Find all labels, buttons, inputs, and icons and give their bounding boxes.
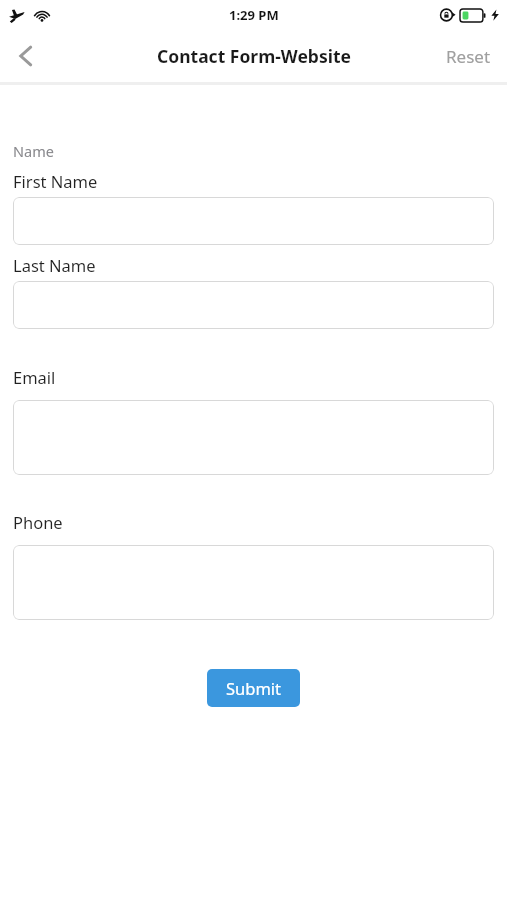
button[interactable]: Reset [434, 37, 503, 76]
button[interactable]: Submit [207, 669, 300, 707]
staticText: Submit [226, 677, 282, 699]
staticText: Reset [446, 45, 491, 68]
staticText: Phone [13, 511, 63, 533]
button[interactable] [13, 400, 494, 475]
button[interactable] [13, 197, 494, 245]
button[interactable] [13, 281, 494, 329]
staticText: First Name [13, 170, 98, 192]
button[interactable] [13, 545, 494, 620]
staticText: Contact Form-Website [157, 44, 351, 68]
staticText: Name [13, 141, 54, 161]
staticText: Last Name [13, 254, 96, 276]
button[interactable]: Back [0, 30, 52, 82]
staticText: 1:29 PM [229, 6, 279, 24]
staticText: Email [13, 366, 56, 388]
